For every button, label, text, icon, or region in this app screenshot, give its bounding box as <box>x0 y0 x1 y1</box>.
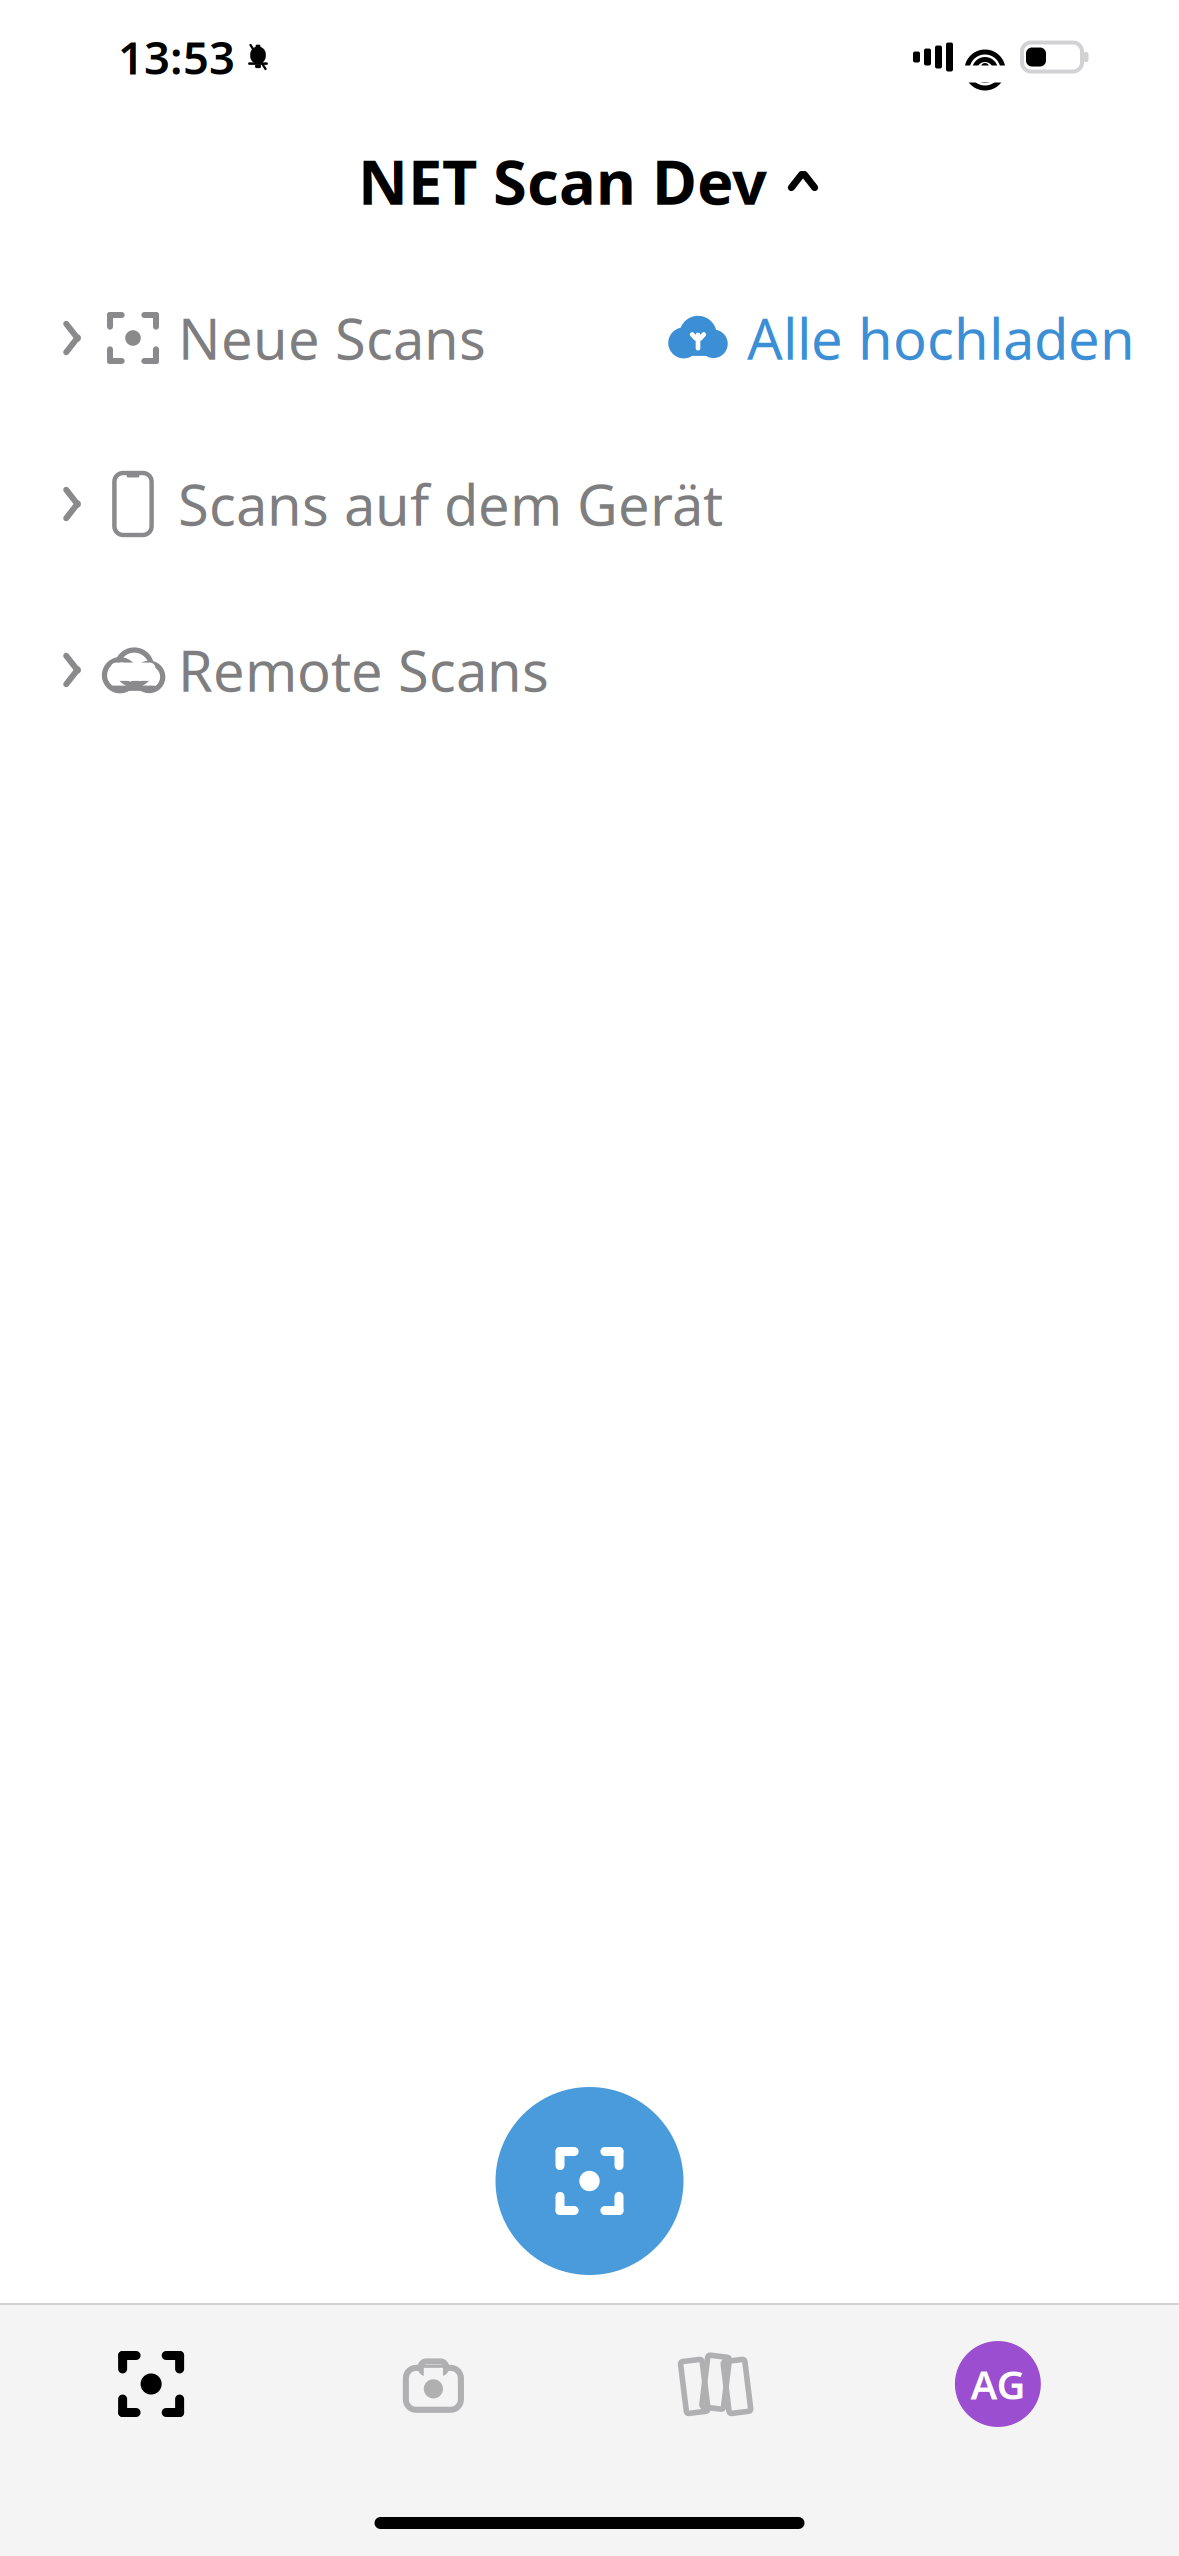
button[interactable]: Scans auf dem Gerät <box>0 452 1179 556</box>
button[interactable]: Kamera <box>292 2329 574 2439</box>
staticText: Alle hochladen <box>747 301 1135 375</box>
button[interactable]: Karte <box>574 2329 857 2439</box>
button[interactable]: Neue Scans <box>44 301 486 375</box>
button[interactable]: Alle hochladen <box>667 289 1135 387</box>
staticText: NET Scan Dev <box>358 140 767 222</box>
button[interactable]: Neue Scans <box>0 286 1179 390</box>
button[interactable]: Remote Scans <box>0 618 1179 722</box>
staticText: AG <box>970 2357 1025 2410</box>
button[interactable]: Profil AG <box>857 2329 1139 2439</box>
button[interactable]: Scans <box>10 2329 292 2439</box>
staticText: 13:53 <box>118 27 235 87</box>
button[interactable]: Remote Scans <box>44 633 549 707</box>
staticText: Scans auf dem Gerät <box>178 467 723 541</box>
staticText: Neue Scans <box>178 301 486 375</box>
button[interactable]: NET Scan Dev <box>358 138 821 224</box>
button[interactable]: Scans auf dem Gerät <box>44 467 723 541</box>
staticText: Remote Scans <box>178 633 549 707</box>
button[interactable]: Neuen Scan starten <box>495 2087 683 2275</box>
